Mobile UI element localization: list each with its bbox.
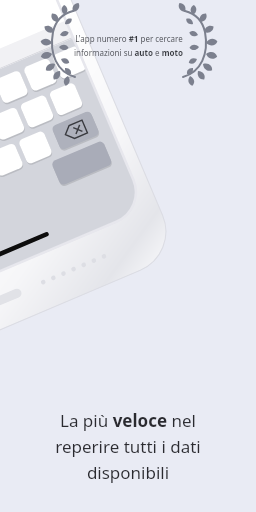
staticText: informazioni su auto e moto	[74, 47, 183, 58]
button[interactable]: L'app numero #1 per cercare	[0, 0, 256, 90]
button[interactable]: La più veloce nel reperire tutti i dati …	[0, 409, 256, 484]
staticText: La più veloce nel reperire tutti i dati …	[55, 409, 201, 484]
staticText: L'app numero #1 per cercare	[75, 33, 183, 44]
